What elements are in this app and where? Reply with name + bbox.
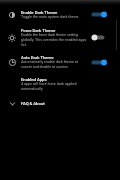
button[interactable]: Force Dark Theme [0,24,120,51]
button[interactable]: Expand FAQ and About [0,95,120,112]
staticText: Enable the force dark theme setting glob… [21,33,88,47]
button[interactable]: Toggle on [88,9,110,20]
staticText: Auto Dark Theme [21,55,54,60]
staticText: Force Dark Theme [21,28,56,33]
button[interactable]: Enabled Apps [0,73,120,95]
staticText: Enabled Apps [21,77,47,82]
staticText: Toggle the main system dark theme [21,15,79,19]
button[interactable]: Auto Dark Theme [0,51,120,73]
staticText: Enable Dark Theme [21,10,58,15]
staticText: Automatically enable dark theme at sunse… [21,60,88,69]
staticText: FAQ & About [21,101,45,106]
other: Expand FAQ and About [9,100,16,107]
button[interactable]: Toggle on [88,57,110,68]
staticText: 4 apps will have force dark applied auto… [21,82,88,91]
button[interactable]: Enable Dark Theme [0,5,120,24]
button[interactable]: Toggle off [88,32,110,43]
